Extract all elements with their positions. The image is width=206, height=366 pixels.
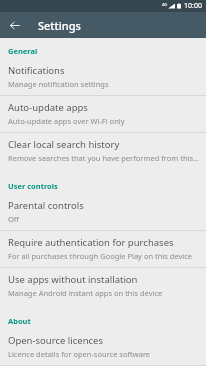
staticText: Off	[8, 214, 20, 224]
staticText: User controls	[8, 181, 206, 191]
staticText: 4G	[162, 2, 168, 7]
button[interactable]: Use apps without installation	[0, 268, 206, 304]
staticText: For all purchases through Google Play on…	[8, 251, 193, 261]
staticText: Auto-update apps over Wi-Fi only	[8, 116, 125, 126]
staticText: Open-source licences	[8, 334, 104, 347]
staticText: Use apps without installation	[8, 273, 138, 286]
staticText: Require authentication for purchases	[8, 236, 174, 249]
staticText: About	[8, 316, 206, 326]
button[interactable]: Clear local search history	[0, 133, 206, 169]
staticText: Remove searches that you have performed …	[8, 153, 200, 163]
button[interactable]: Notifications	[0, 59, 206, 95]
button[interactable]: Auto-update apps	[0, 96, 206, 132]
staticText: Notifications	[8, 64, 65, 77]
button[interactable]: Require authentication for purchases	[0, 231, 206, 267]
button[interactable]: Open-source licences	[0, 329, 206, 365]
staticText: General	[8, 46, 206, 56]
button[interactable]: Parental controls	[0, 194, 206, 230]
staticText: Licence details for open-source software	[8, 349, 151, 359]
staticText: Parental controls	[8, 199, 84, 212]
staticText: Manage Android instant apps on this devi…	[8, 288, 163, 298]
staticText: Auto-update apps	[8, 101, 88, 114]
button[interactable]: Back	[4, 15, 25, 36]
staticText: Settings	[38, 18, 81, 33]
staticText: Manage notification settings	[8, 79, 109, 89]
staticText: Clear local search history	[8, 138, 120, 151]
staticText: 10:00	[184, 1, 202, 11]
